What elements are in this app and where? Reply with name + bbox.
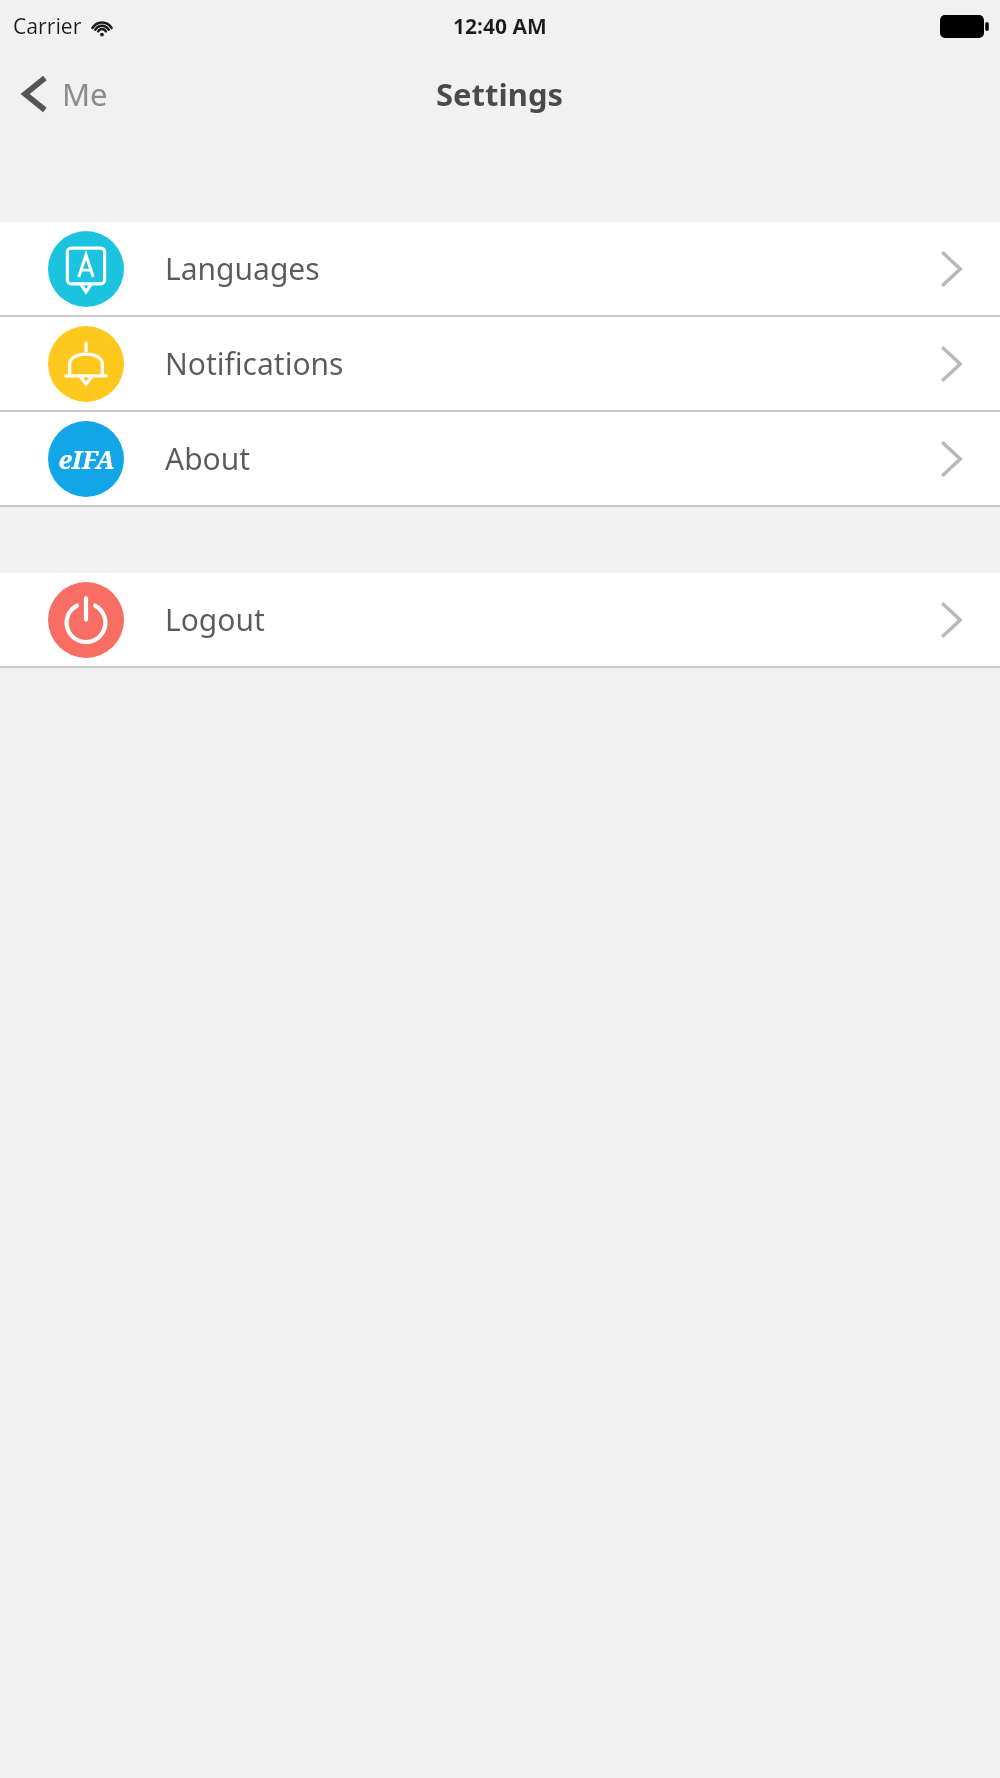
staticText: Settings [436, 73, 564, 115]
staticText: Notifications [165, 343, 940, 384]
button[interactable]: Me [0, 53, 126, 135]
staticText: Carrier [13, 12, 82, 41]
staticText: Me [62, 73, 108, 115]
button[interactable]: Notifications [0, 317, 1000, 410]
button[interactable]: Languages [0, 222, 1000, 315]
button[interactable]: eIFA [0, 412, 1000, 505]
staticText: Languages [165, 248, 940, 289]
staticText: About [165, 438, 940, 479]
staticText: Logout [165, 599, 940, 640]
button[interactable]: Logout [0, 573, 1000, 666]
staticText: eIFA [58, 442, 115, 476]
staticText: 12:40 AM [453, 12, 547, 41]
